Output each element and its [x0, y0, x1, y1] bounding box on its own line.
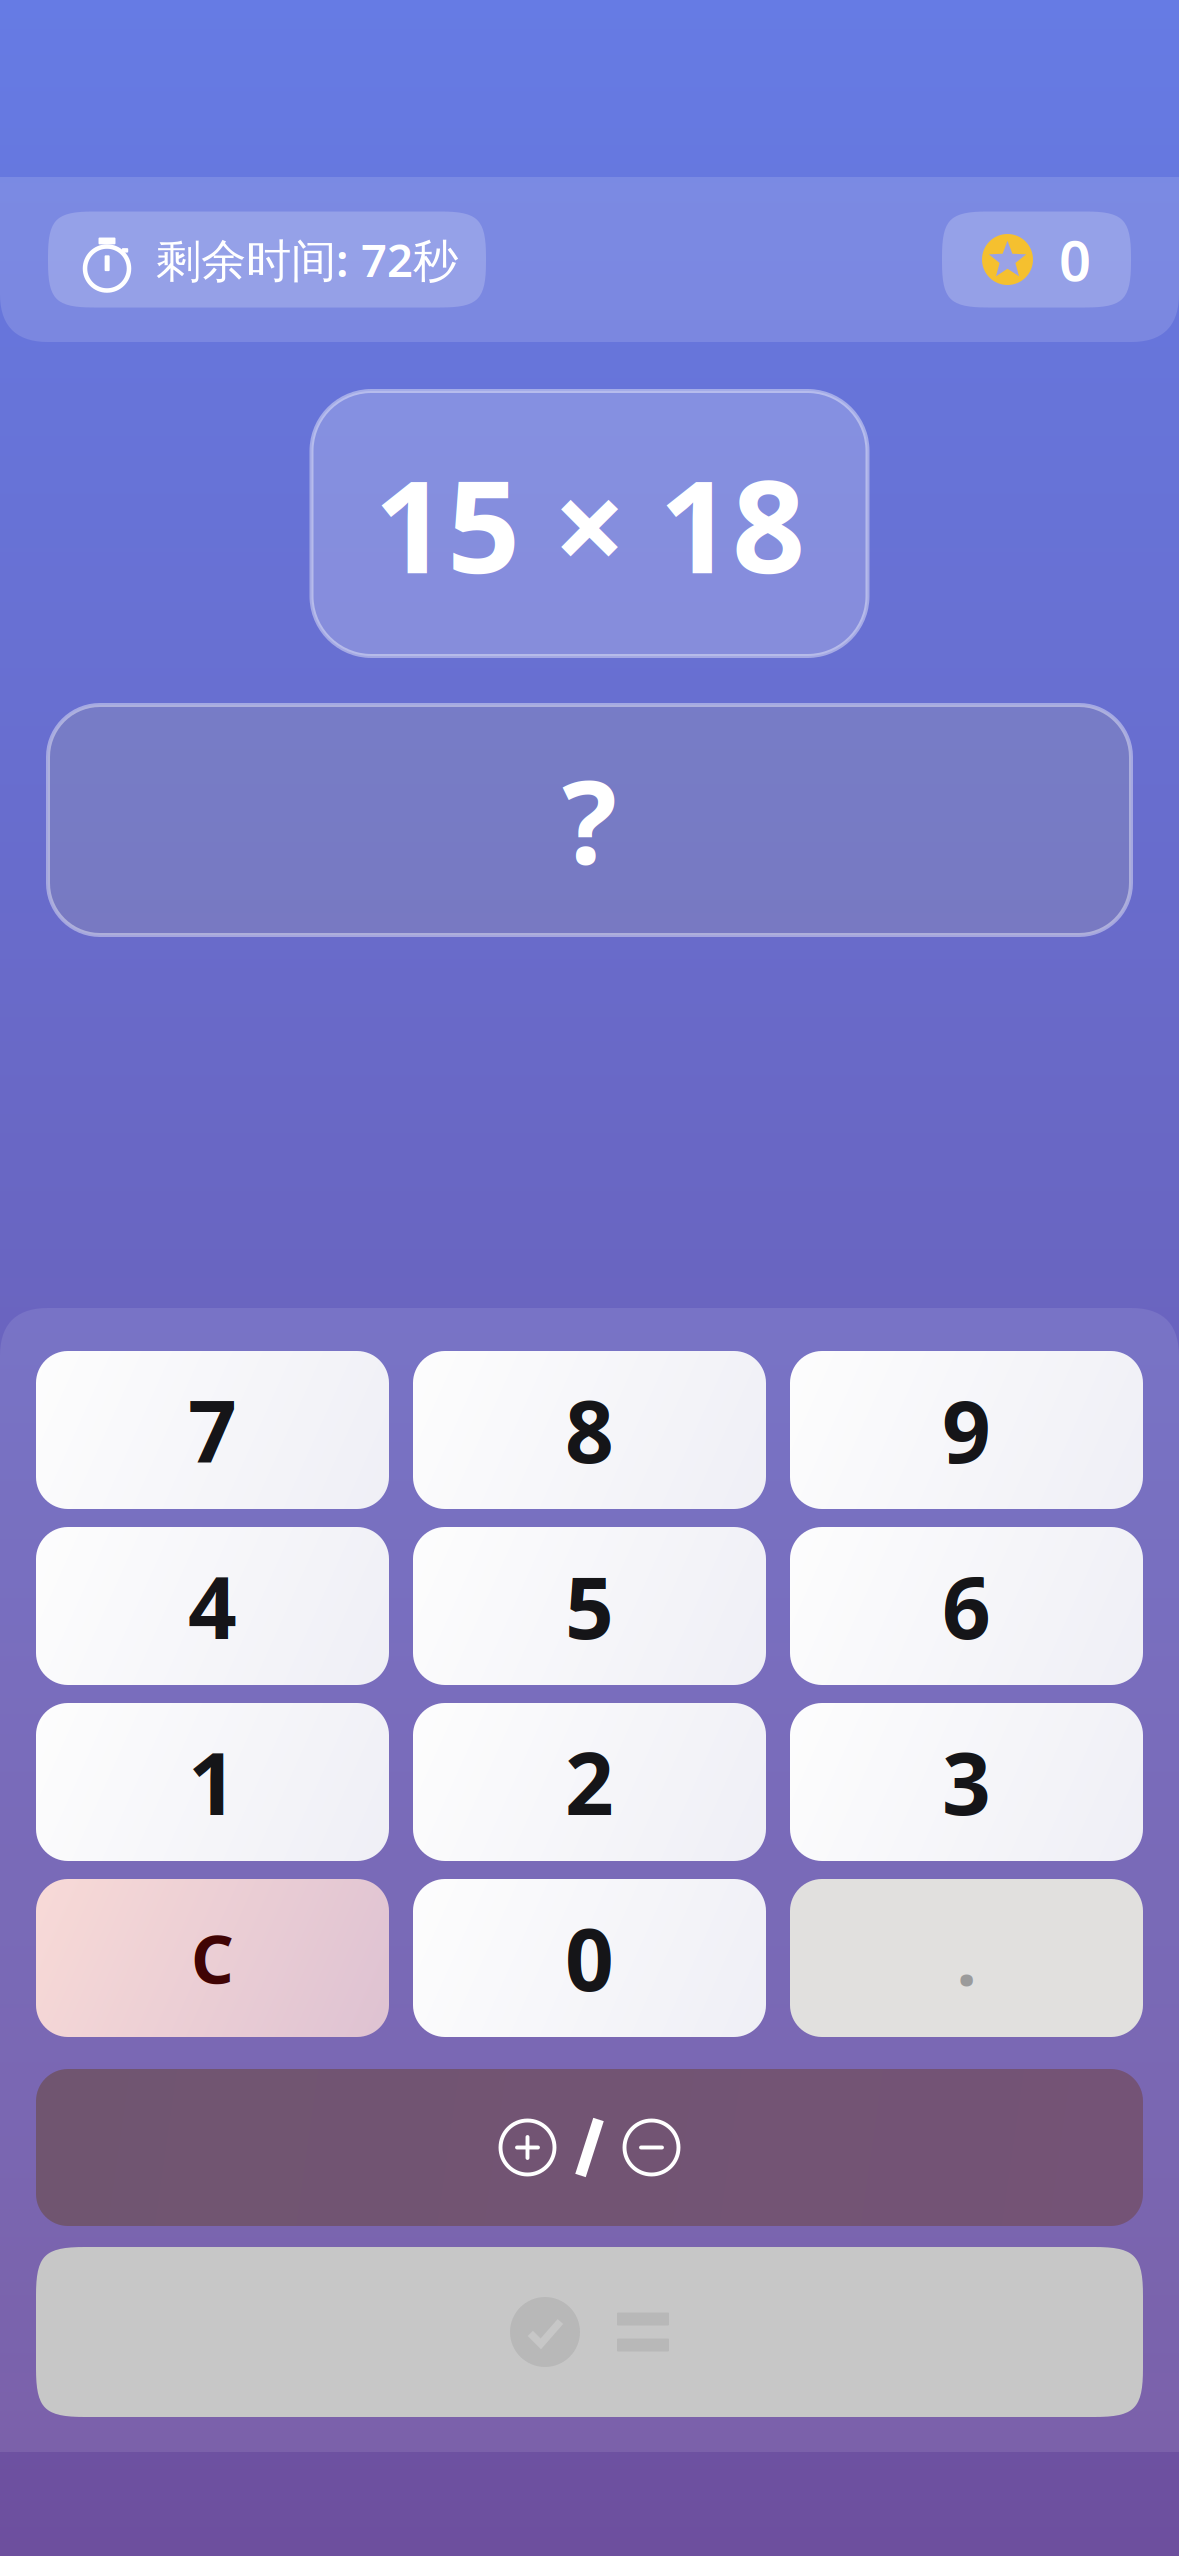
staticText: ? [562, 744, 617, 896]
button[interactable]: 1 [36, 1703, 389, 1861]
button[interactable]: 剩余时间: 72秒 [48, 211, 486, 307]
staticText: 2 [565, 1725, 614, 1839]
staticText: 8 [565, 1373, 614, 1487]
staticText: 0 [565, 1901, 614, 2015]
button[interactable]: 2 [413, 1703, 766, 1861]
button[interactable]: C [36, 1879, 389, 2037]
staticText: . [956, 1910, 976, 2006]
button[interactable] [36, 2247, 1143, 2417]
staticText: 5 [565, 1549, 614, 1663]
button[interactable]: 5 [413, 1527, 766, 1685]
button[interactable]: 7 [36, 1351, 389, 1509]
staticText: 6 [942, 1549, 991, 1663]
button[interactable]: 3 [790, 1703, 1143, 1861]
staticText: 0 [1059, 222, 1091, 297]
staticText: 3 [942, 1725, 991, 1839]
staticText: C [191, 1914, 234, 2002]
button[interactable]: 9 [790, 1351, 1143, 1509]
staticText: 剩余时间: 72秒 [156, 229, 458, 290]
staticText: 9 [942, 1373, 991, 1487]
button[interactable]: 8 [413, 1351, 766, 1509]
button[interactable] [36, 2069, 1143, 2226]
staticText: 4 [188, 1549, 237, 1663]
staticText: 7 [188, 1373, 237, 1487]
staticText: 15 × 18 [374, 438, 805, 608]
button[interactable]: 0 [942, 211, 1131, 307]
button[interactable]: 0 [413, 1879, 766, 2037]
staticText: 1 [188, 1725, 237, 1839]
button[interactable]: . [790, 1879, 1143, 2037]
button[interactable]: 6 [790, 1527, 1143, 1685]
button[interactable]: 4 [36, 1527, 389, 1685]
